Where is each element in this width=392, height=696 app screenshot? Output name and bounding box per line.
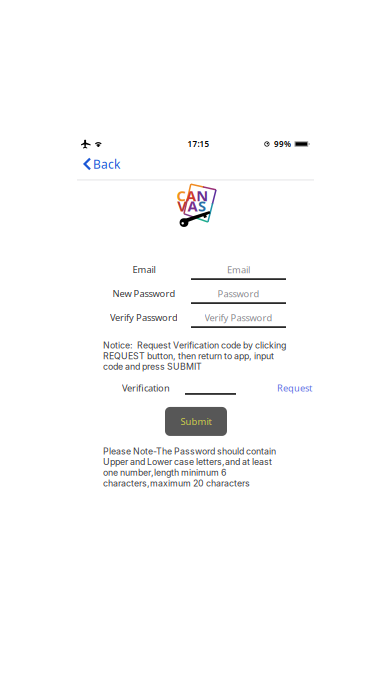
staticText: A bbox=[186, 186, 196, 205]
staticText: S bbox=[198, 196, 206, 216]
staticText: Verify Password bbox=[110, 311, 178, 324]
staticText: 17:15 bbox=[187, 139, 209, 149]
button[interactable]: Request bbox=[277, 382, 312, 393]
staticText: 99% bbox=[274, 139, 291, 149]
staticText: Verification bbox=[122, 382, 170, 394]
staticText: Email bbox=[132, 263, 155, 276]
button[interactable]: Verify Password bbox=[191, 312, 286, 328]
staticText: Password bbox=[217, 287, 259, 300]
staticText: Please Note-The Password should contain … bbox=[103, 446, 276, 488]
button[interactable]: Email bbox=[191, 264, 286, 280]
staticText: V bbox=[177, 196, 187, 216]
staticText: Submit bbox=[180, 415, 211, 428]
staticText: Request bbox=[277, 382, 312, 394]
button[interactable]: Back bbox=[77, 157, 314, 171]
staticText: C bbox=[176, 186, 185, 205]
button[interactable]: Submit bbox=[165, 407, 227, 436]
staticText: Back bbox=[93, 156, 120, 172]
staticText: New Password bbox=[112, 287, 175, 300]
button[interactable] bbox=[185, 381, 236, 395]
staticText: N bbox=[196, 186, 208, 205]
staticText: Email bbox=[227, 263, 250, 276]
staticText: Verify Password bbox=[204, 311, 272, 324]
staticText: Notice: Request Verification code by cli… bbox=[103, 340, 286, 372]
staticText: A bbox=[188, 196, 198, 216]
button[interactable]: Password bbox=[191, 288, 286, 304]
